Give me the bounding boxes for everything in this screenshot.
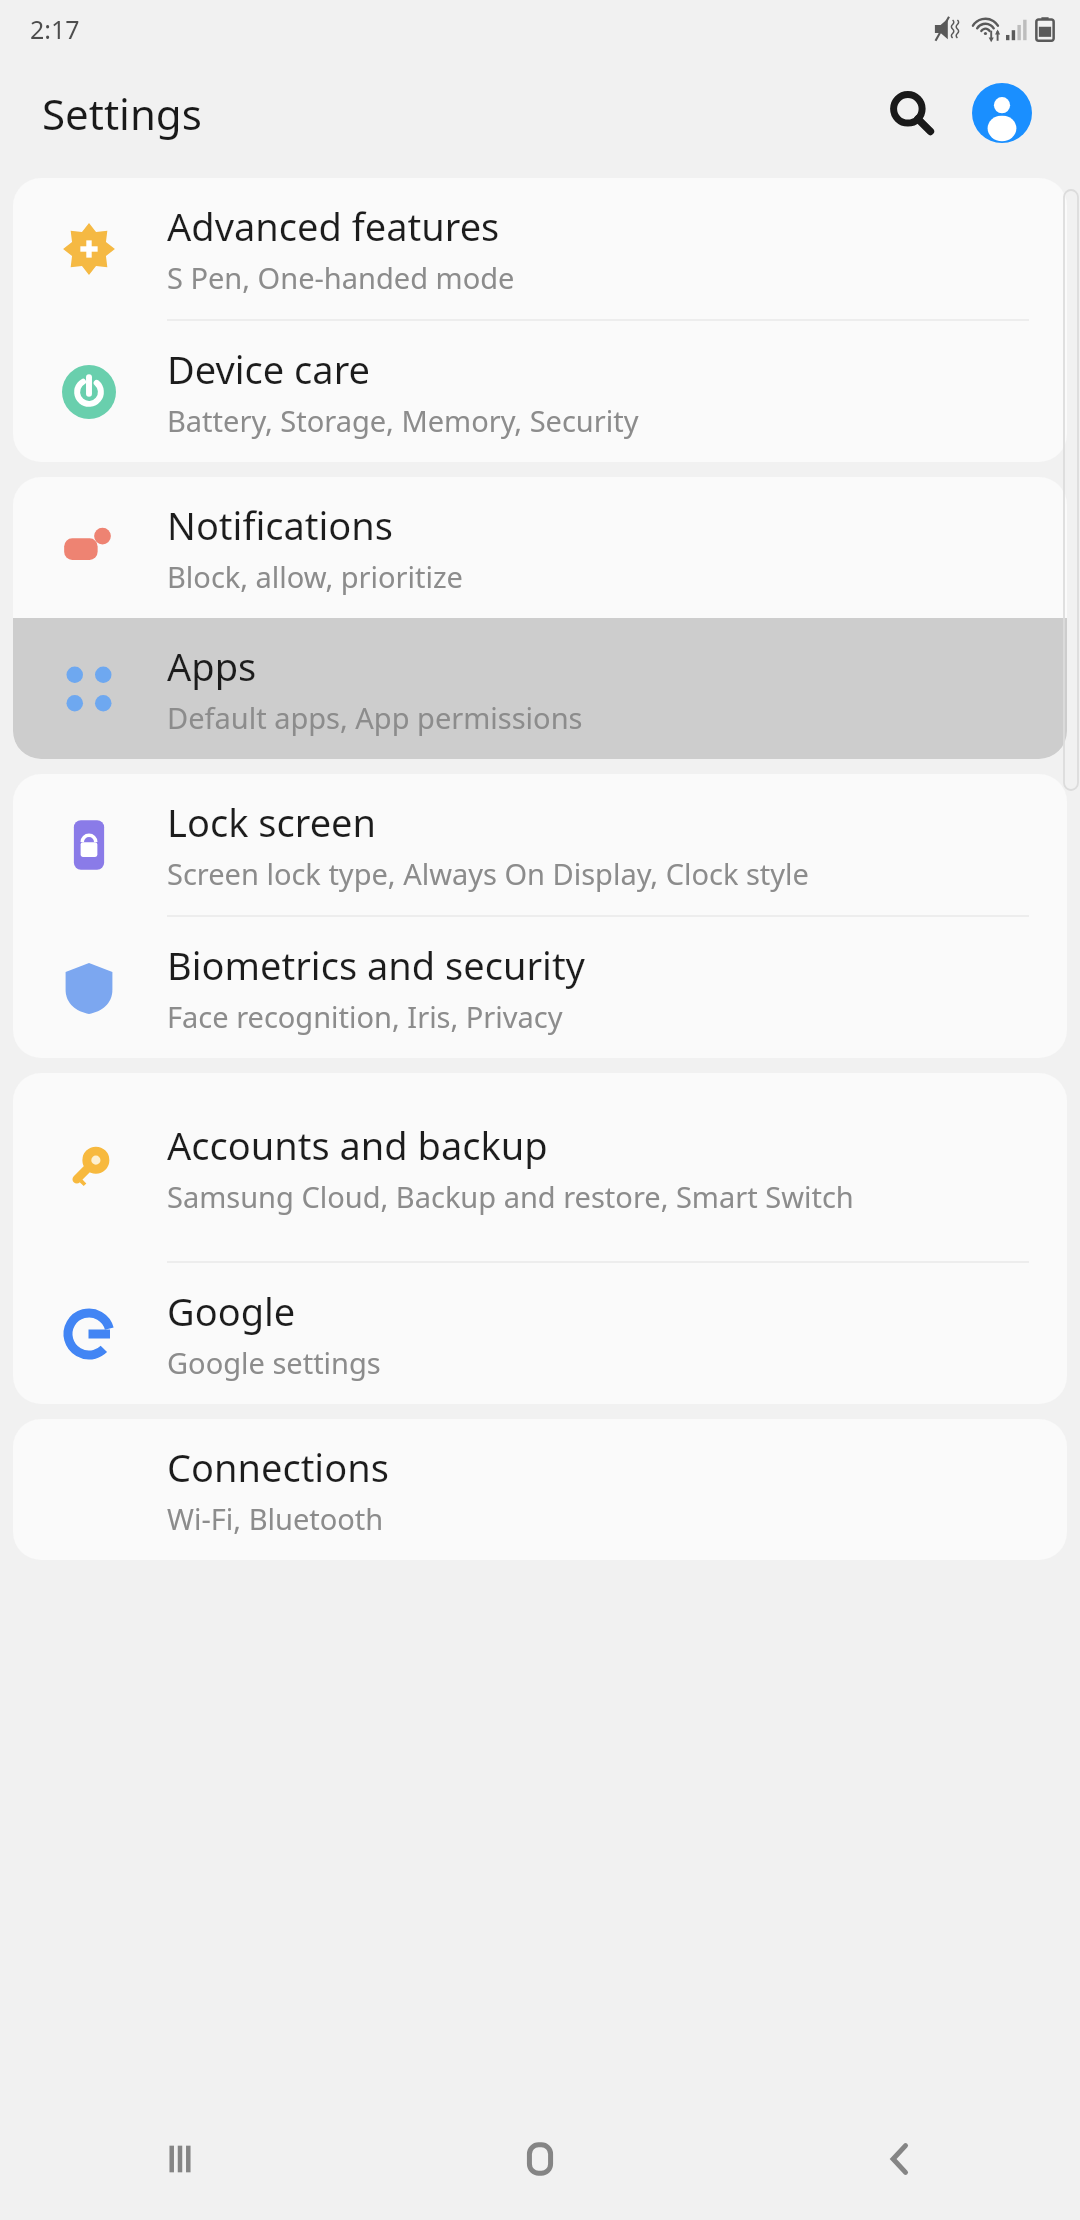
staticText: Advanced features (167, 200, 500, 252)
staticText: Settings (42, 85, 202, 142)
staticText: Accounts and backup (167, 1119, 548, 1171)
button[interactable]: Advanced features (13, 178, 1067, 319)
staticText: Battery, Storage, Memory, Security (167, 401, 639, 440)
button[interactable]: Apps (13, 618, 1067, 759)
staticText: Google settings (167, 1343, 381, 1382)
button[interactable]: Notifications (13, 477, 1067, 618)
staticText: Google (167, 1285, 296, 1337)
staticText: Apps (167, 640, 257, 692)
staticText: S Pen, One-handed mode (167, 258, 515, 297)
button[interactable]: Back (720, 2098, 1080, 2220)
button[interactable]: Connections (13, 1419, 1067, 1560)
staticText: Notifications (167, 499, 394, 551)
button[interactable]: Recents (0, 2098, 360, 2220)
staticText: Block, allow, prioritize (167, 557, 463, 596)
staticText: Lock screen (167, 796, 377, 848)
button[interactable]: Home (360, 2098, 720, 2220)
staticText: Default apps, App permissions (167, 698, 583, 737)
button[interactable]: Account (964, 75, 1040, 151)
button[interactable]: Biometrics and security (13, 917, 1067, 1058)
staticText: Connections (167, 1441, 389, 1493)
button[interactable]: Google (13, 1263, 1067, 1404)
staticText: Face recognition, Iris, Privacy (167, 997, 563, 1036)
staticText: Wi-Fi, Bluetooth (167, 1499, 384, 1538)
staticText: Biometrics and security (167, 939, 586, 991)
button[interactable]: Search (874, 75, 950, 151)
button[interactable]: Accounts and backup (13, 1073, 1067, 1261)
staticText: Device care (167, 343, 370, 395)
staticText: Screen lock type, Always On Display, Clo… (167, 854, 809, 893)
button[interactable]: Device care (13, 321, 1067, 462)
staticText: 2:17 (30, 12, 80, 46)
button[interactable]: Lock screen (13, 774, 1067, 915)
staticText: Samsung Cloud, Backup and restore, Smart… (167, 1177, 854, 1216)
